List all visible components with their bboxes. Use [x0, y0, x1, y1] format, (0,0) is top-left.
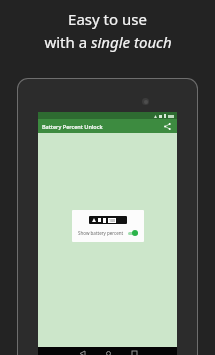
staticText: 100 [109, 218, 116, 223]
button[interactable]: Back [69, 347, 95, 355]
button[interactable]: Share [162, 121, 173, 132]
staticText: Show battery percent [78, 230, 124, 236]
button[interactable]: 100 [72, 210, 144, 242]
staticText: Battery Percent Unlock [42, 123, 103, 130]
button[interactable]: Show battery percent toggle [127, 230, 138, 236]
button[interactable]: Recents [121, 347, 147, 355]
button[interactable]: Home [95, 347, 121, 355]
staticText: with a single touch [44, 32, 172, 52]
staticText: Easy to use [68, 9, 147, 29]
